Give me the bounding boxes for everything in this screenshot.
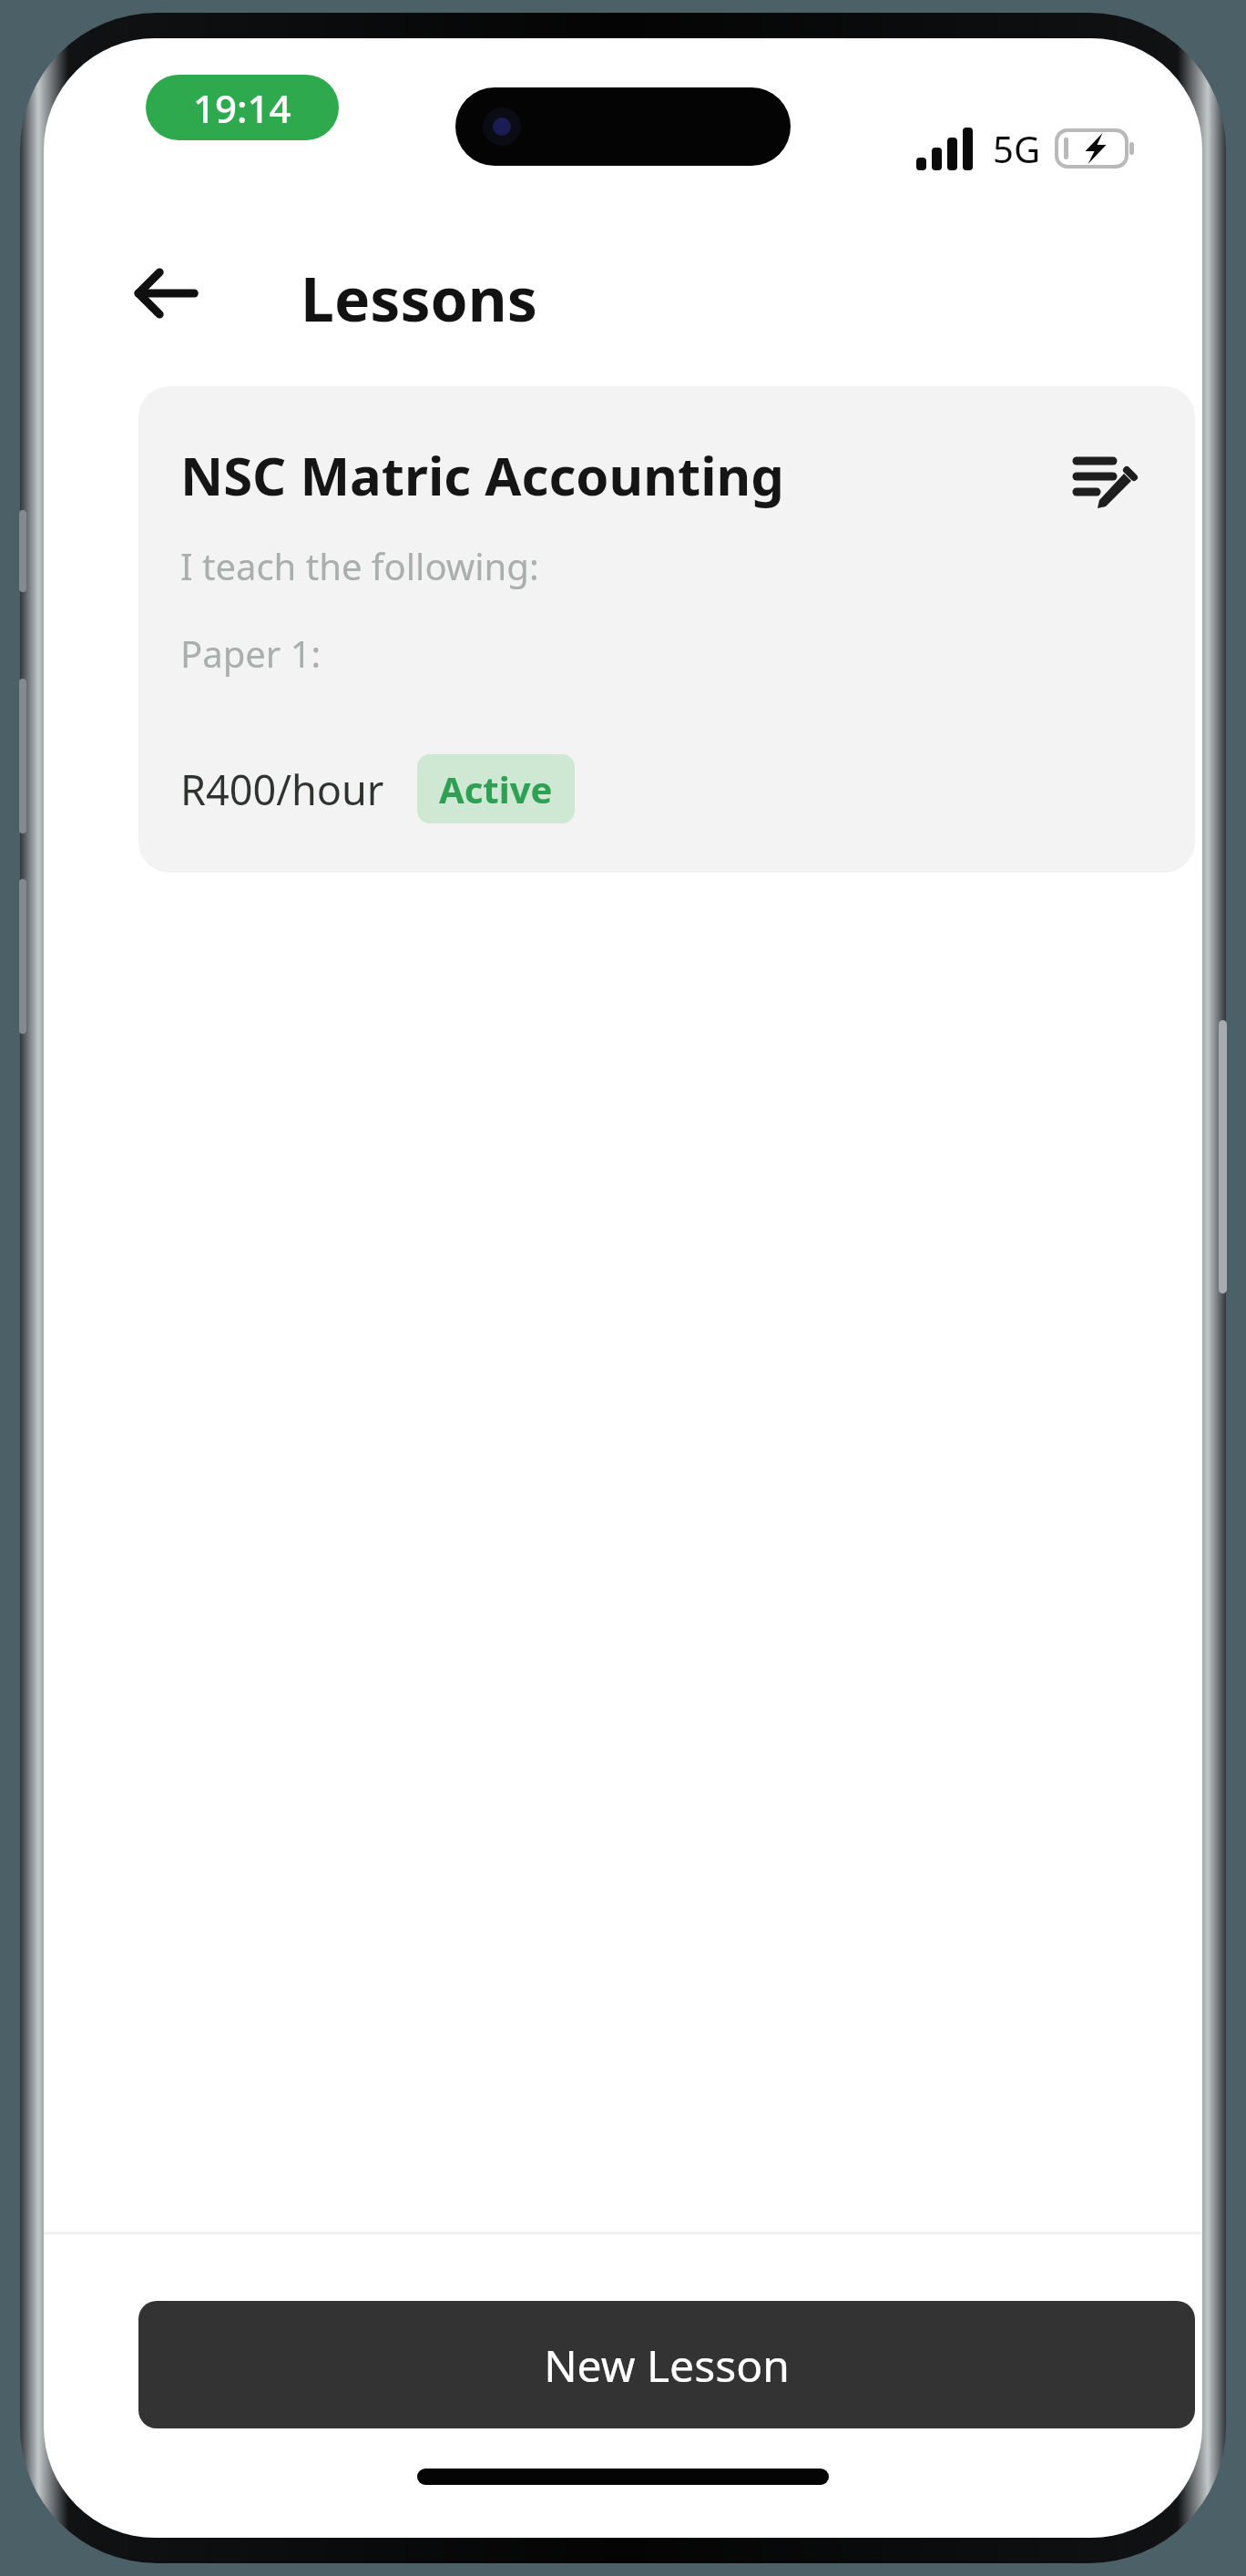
button[interactable]: Back	[117, 244, 215, 342]
staticText: R400/hour	[180, 762, 384, 817]
staticText: Paper 1:	[180, 629, 322, 678]
button[interactable]: Active	[417, 754, 575, 823]
staticText: NSC Matric Accounting	[180, 439, 784, 511]
staticText: New Lesson	[544, 2336, 790, 2395]
staticText: Active	[439, 764, 553, 813]
button[interactable]: Edit lesson	[1057, 434, 1151, 528]
staticText: Lessons	[301, 257, 537, 339]
button[interactable]: New Lesson	[138, 2301, 1195, 2428]
staticText: 19:14	[193, 82, 291, 134]
staticText: I teach the following:	[180, 541, 539, 590]
button[interactable]: NSC Matric Accounting	[138, 386, 1195, 873]
staticText: 5G	[993, 124, 1040, 173]
